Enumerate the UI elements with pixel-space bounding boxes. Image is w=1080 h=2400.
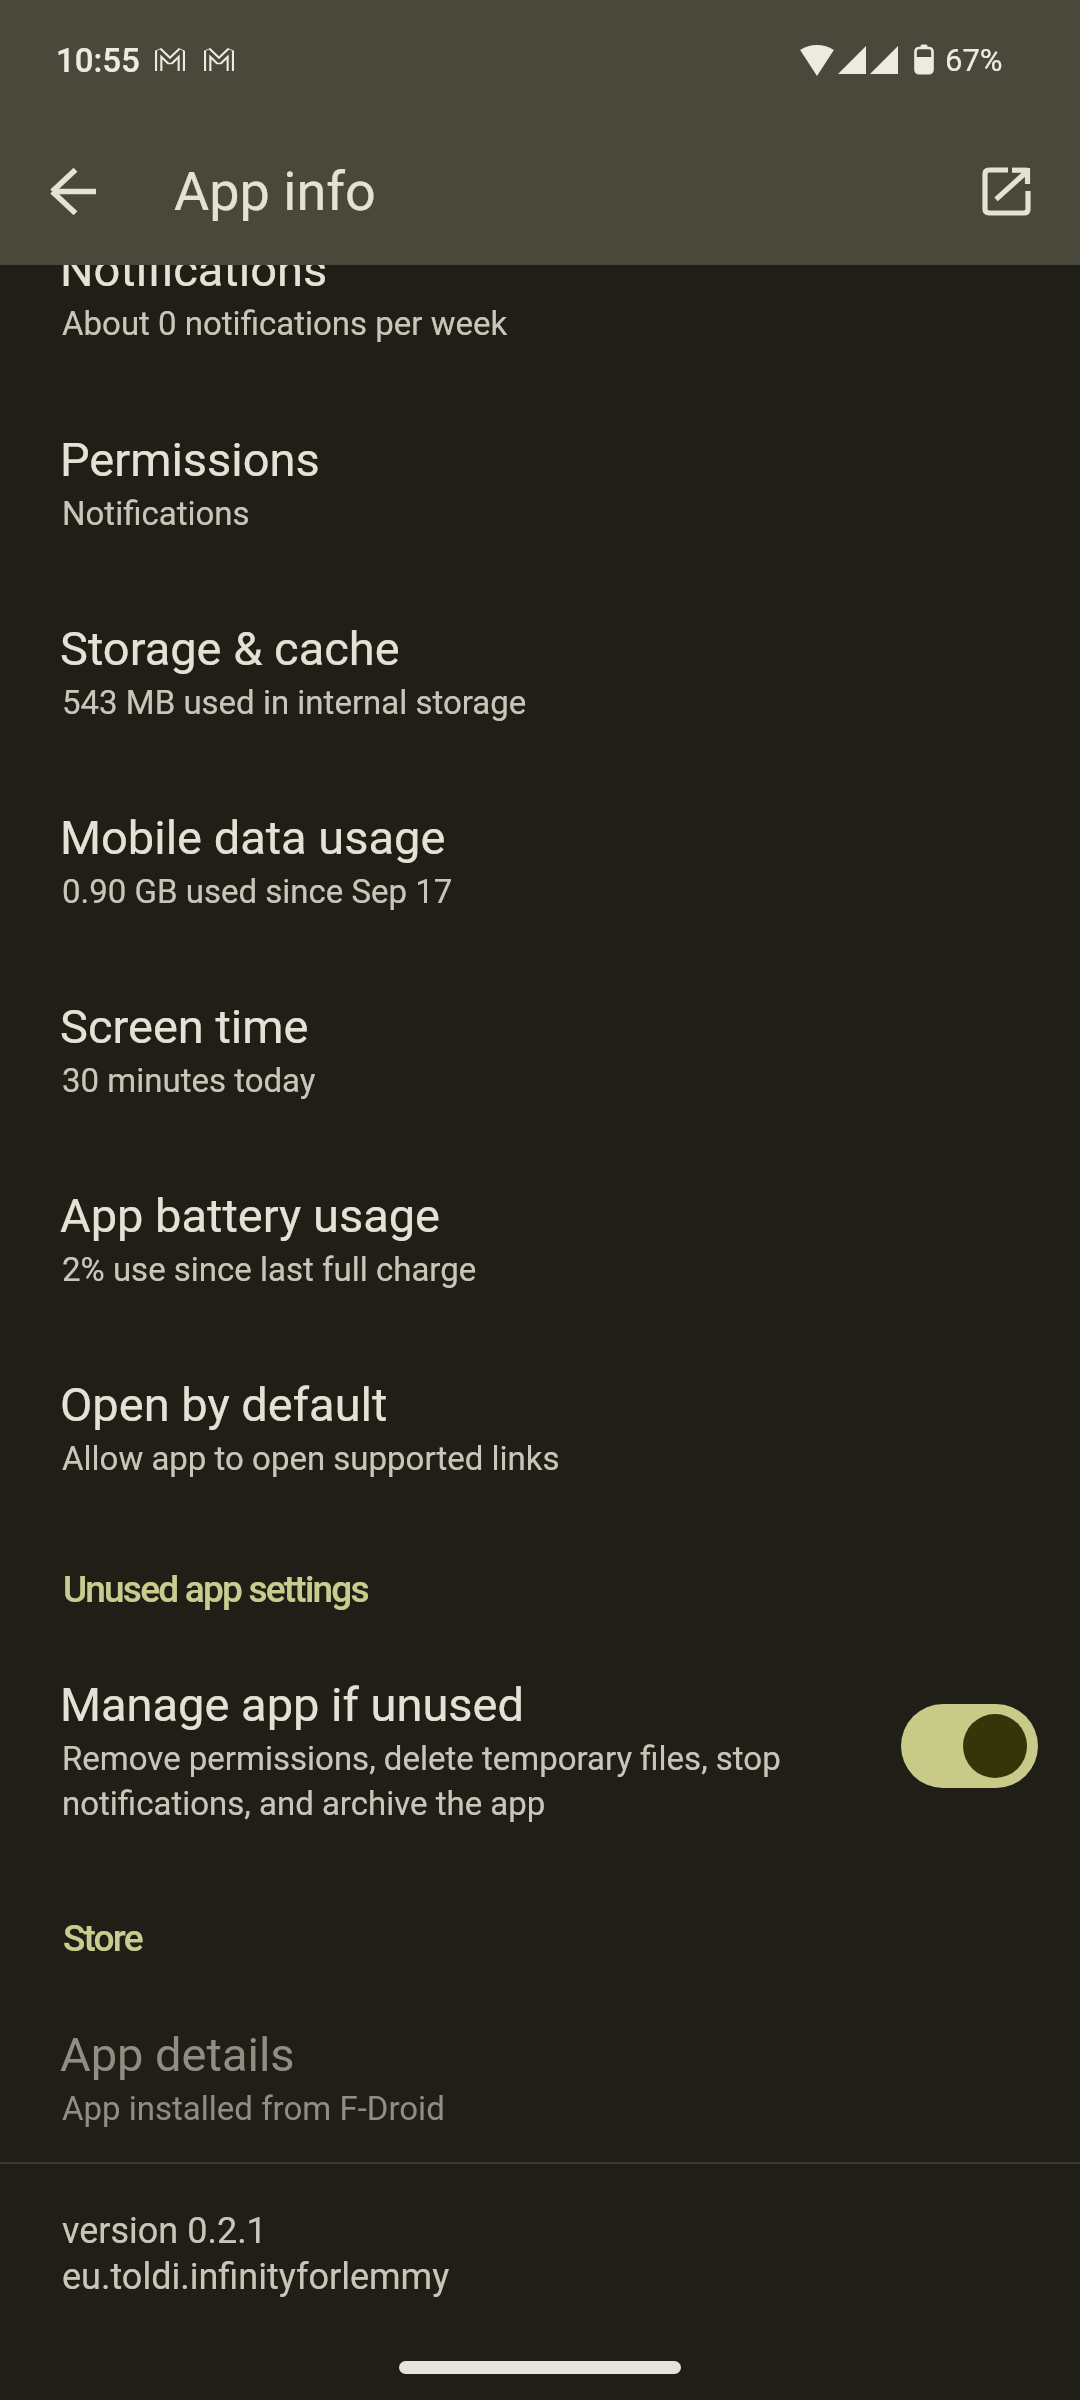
staticText: 30 minutes today bbox=[62, 1061, 316, 1100]
button[interactable]: Notifications bbox=[0, 199, 1080, 388]
staticText: Manage app if unused bbox=[60, 1677, 524, 1732]
button[interactable]: App battery usage bbox=[0, 1145, 1080, 1334]
staticText: App info bbox=[174, 160, 376, 223]
staticText: About 0 notifications per week bbox=[62, 304, 508, 343]
staticText: Unused app settings bbox=[63, 1568, 368, 1611]
button[interactable]: Screen time bbox=[0, 956, 1080, 1145]
button[interactable]: Mobile data usage bbox=[0, 767, 1080, 956]
button[interactable]: Storage & cache bbox=[0, 578, 1080, 767]
staticText: App installed from F-Droid bbox=[62, 2089, 445, 2128]
staticText: Permissions bbox=[60, 432, 320, 487]
staticText: Allow app to open supported links bbox=[62, 1439, 560, 1478]
staticText: App details bbox=[60, 2027, 295, 2082]
button[interactable]: App details bbox=[0, 1984, 1080, 2173]
button[interactable] bbox=[49, 167, 97, 215]
staticText: 10:55 bbox=[56, 41, 140, 80]
staticText: version 0.2.1 bbox=[62, 2210, 267, 2252]
staticText: Store bbox=[63, 1917, 142, 1960]
staticText: 0.90 GB used since Sep 17 bbox=[62, 872, 453, 911]
button[interactable]: Permissions bbox=[0, 389, 1080, 578]
button[interactable]: Open by default bbox=[0, 1334, 1080, 1523]
staticText: Storage & cache bbox=[60, 621, 400, 676]
staticText: 2% use since last full charge bbox=[62, 1250, 477, 1289]
staticText: Notifications bbox=[60, 242, 328, 297]
staticText: Remove permissions, delete temporary fil… bbox=[62, 1739, 781, 1823]
button[interactable] bbox=[901, 1704, 1038, 1788]
staticText: Open by default bbox=[60, 1377, 388, 1432]
staticText: Screen time bbox=[60, 999, 309, 1054]
button[interactable]: Manage app if unused bbox=[0, 1634, 1080, 1850]
staticText: 67% bbox=[945, 42, 1003, 78]
staticText: eu.toldi.infinityforlemmy bbox=[62, 2256, 450, 2298]
staticText: 543 MB used in internal storage bbox=[62, 683, 527, 722]
staticText: Notifications bbox=[62, 494, 250, 533]
staticText: Mobile data usage bbox=[60, 810, 446, 865]
button[interactable] bbox=[982, 167, 1030, 215]
staticText: App battery usage bbox=[60, 1188, 441, 1243]
